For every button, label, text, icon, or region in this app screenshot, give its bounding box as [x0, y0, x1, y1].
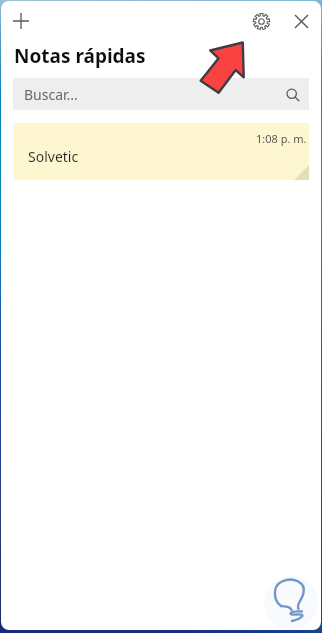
staticText: Solvetic	[28, 147, 79, 166]
button[interactable]: Buscar...	[13, 78, 309, 110]
staticText: 1:08 p. m.	[256, 131, 307, 146]
staticText: Buscar...	[24, 85, 78, 104]
button[interactable]: 1:08 p. m.	[13, 123, 309, 180]
button[interactable]: Configuración	[246, 6, 276, 36]
button[interactable]: Nueva nota	[6, 6, 35, 35]
button[interactable]: Cerrar	[286, 6, 316, 36]
button[interactable]: Enviar comentarios	[264, 576, 318, 630]
staticText: Notas rápidas	[14, 43, 146, 69]
